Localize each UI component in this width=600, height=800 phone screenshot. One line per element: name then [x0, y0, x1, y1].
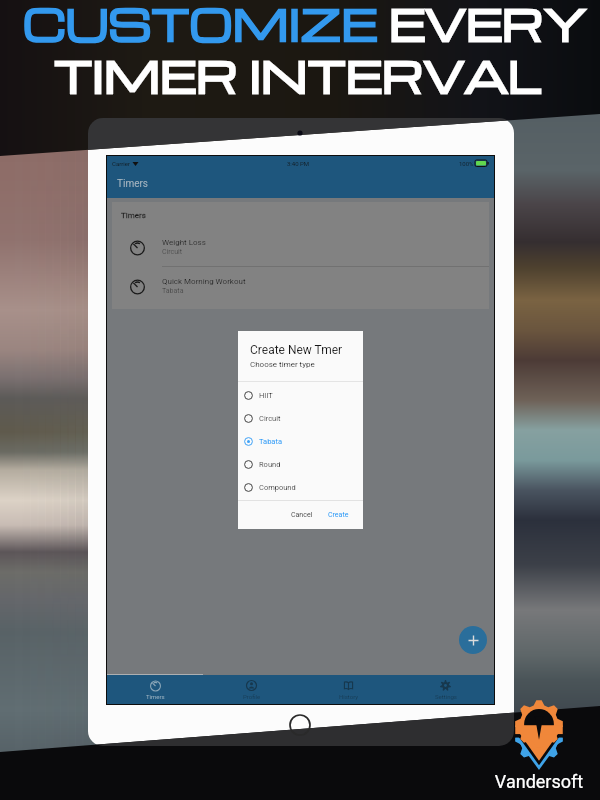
staticText: Round [259, 460, 281, 469]
staticText: Timers [146, 693, 165, 700]
staticText: 3:40 PM [287, 160, 310, 167]
button[interactable]: Quick Morning Workout [112, 267, 489, 305]
staticText: Choose timer type [250, 360, 315, 369]
staticText: HIIT [259, 391, 273, 400]
staticText: Timers [121, 211, 146, 220]
staticText: Create [328, 511, 349, 519]
staticText: EVERY [389, 0, 588, 52]
button[interactable]: Timers [107, 675, 203, 704]
button[interactable]: Profile [203, 675, 300, 704]
staticText: Vandersoft [477, 771, 600, 792]
staticText: CUSTOMIZE [23, 0, 389, 52]
staticText: Create New Tmer [250, 343, 343, 357]
button[interactable]: Circuit [238, 407, 363, 430]
staticText: Cancel [291, 511, 313, 519]
staticText: 100% [459, 160, 474, 167]
staticText: Weight Loss [162, 238, 206, 247]
staticText: Timers [117, 178, 149, 190]
staticText: Settings [435, 693, 457, 700]
button[interactable]: Tabata [238, 430, 363, 453]
staticText: Carrier [112, 160, 130, 167]
staticText: TIMER INTERVAL [54, 46, 542, 104]
button[interactable]: HIIT [238, 384, 363, 407]
button[interactable]: Round [238, 453, 363, 476]
staticText: Tabata [162, 287, 184, 295]
staticText: TIMER INTERVAL [54, 46, 542, 104]
staticText: Compound [259, 483, 296, 492]
button[interactable]: Settings [397, 675, 494, 704]
staticText: Circuit [259, 414, 281, 423]
staticText: Circuit [162, 248, 183, 256]
staticText: CUSTOMIZE [23, 0, 389, 52]
button[interactable]: Compound [238, 476, 363, 499]
staticText: History [339, 693, 359, 700]
staticText: Quick Morning Workout [162, 277, 246, 286]
button[interactable]: Add timer [459, 626, 487, 654]
button[interactable]: Timers [107, 170, 494, 198]
button[interactable]: Create [323, 507, 354, 523]
staticText: Tabata [259, 437, 282, 446]
button[interactable]: Cancel [287, 507, 317, 523]
button[interactable]: History [300, 675, 397, 704]
staticText: EVERY [389, 0, 588, 52]
staticText: Profile [243, 693, 261, 700]
button[interactable]: Weight Loss [112, 228, 489, 266]
